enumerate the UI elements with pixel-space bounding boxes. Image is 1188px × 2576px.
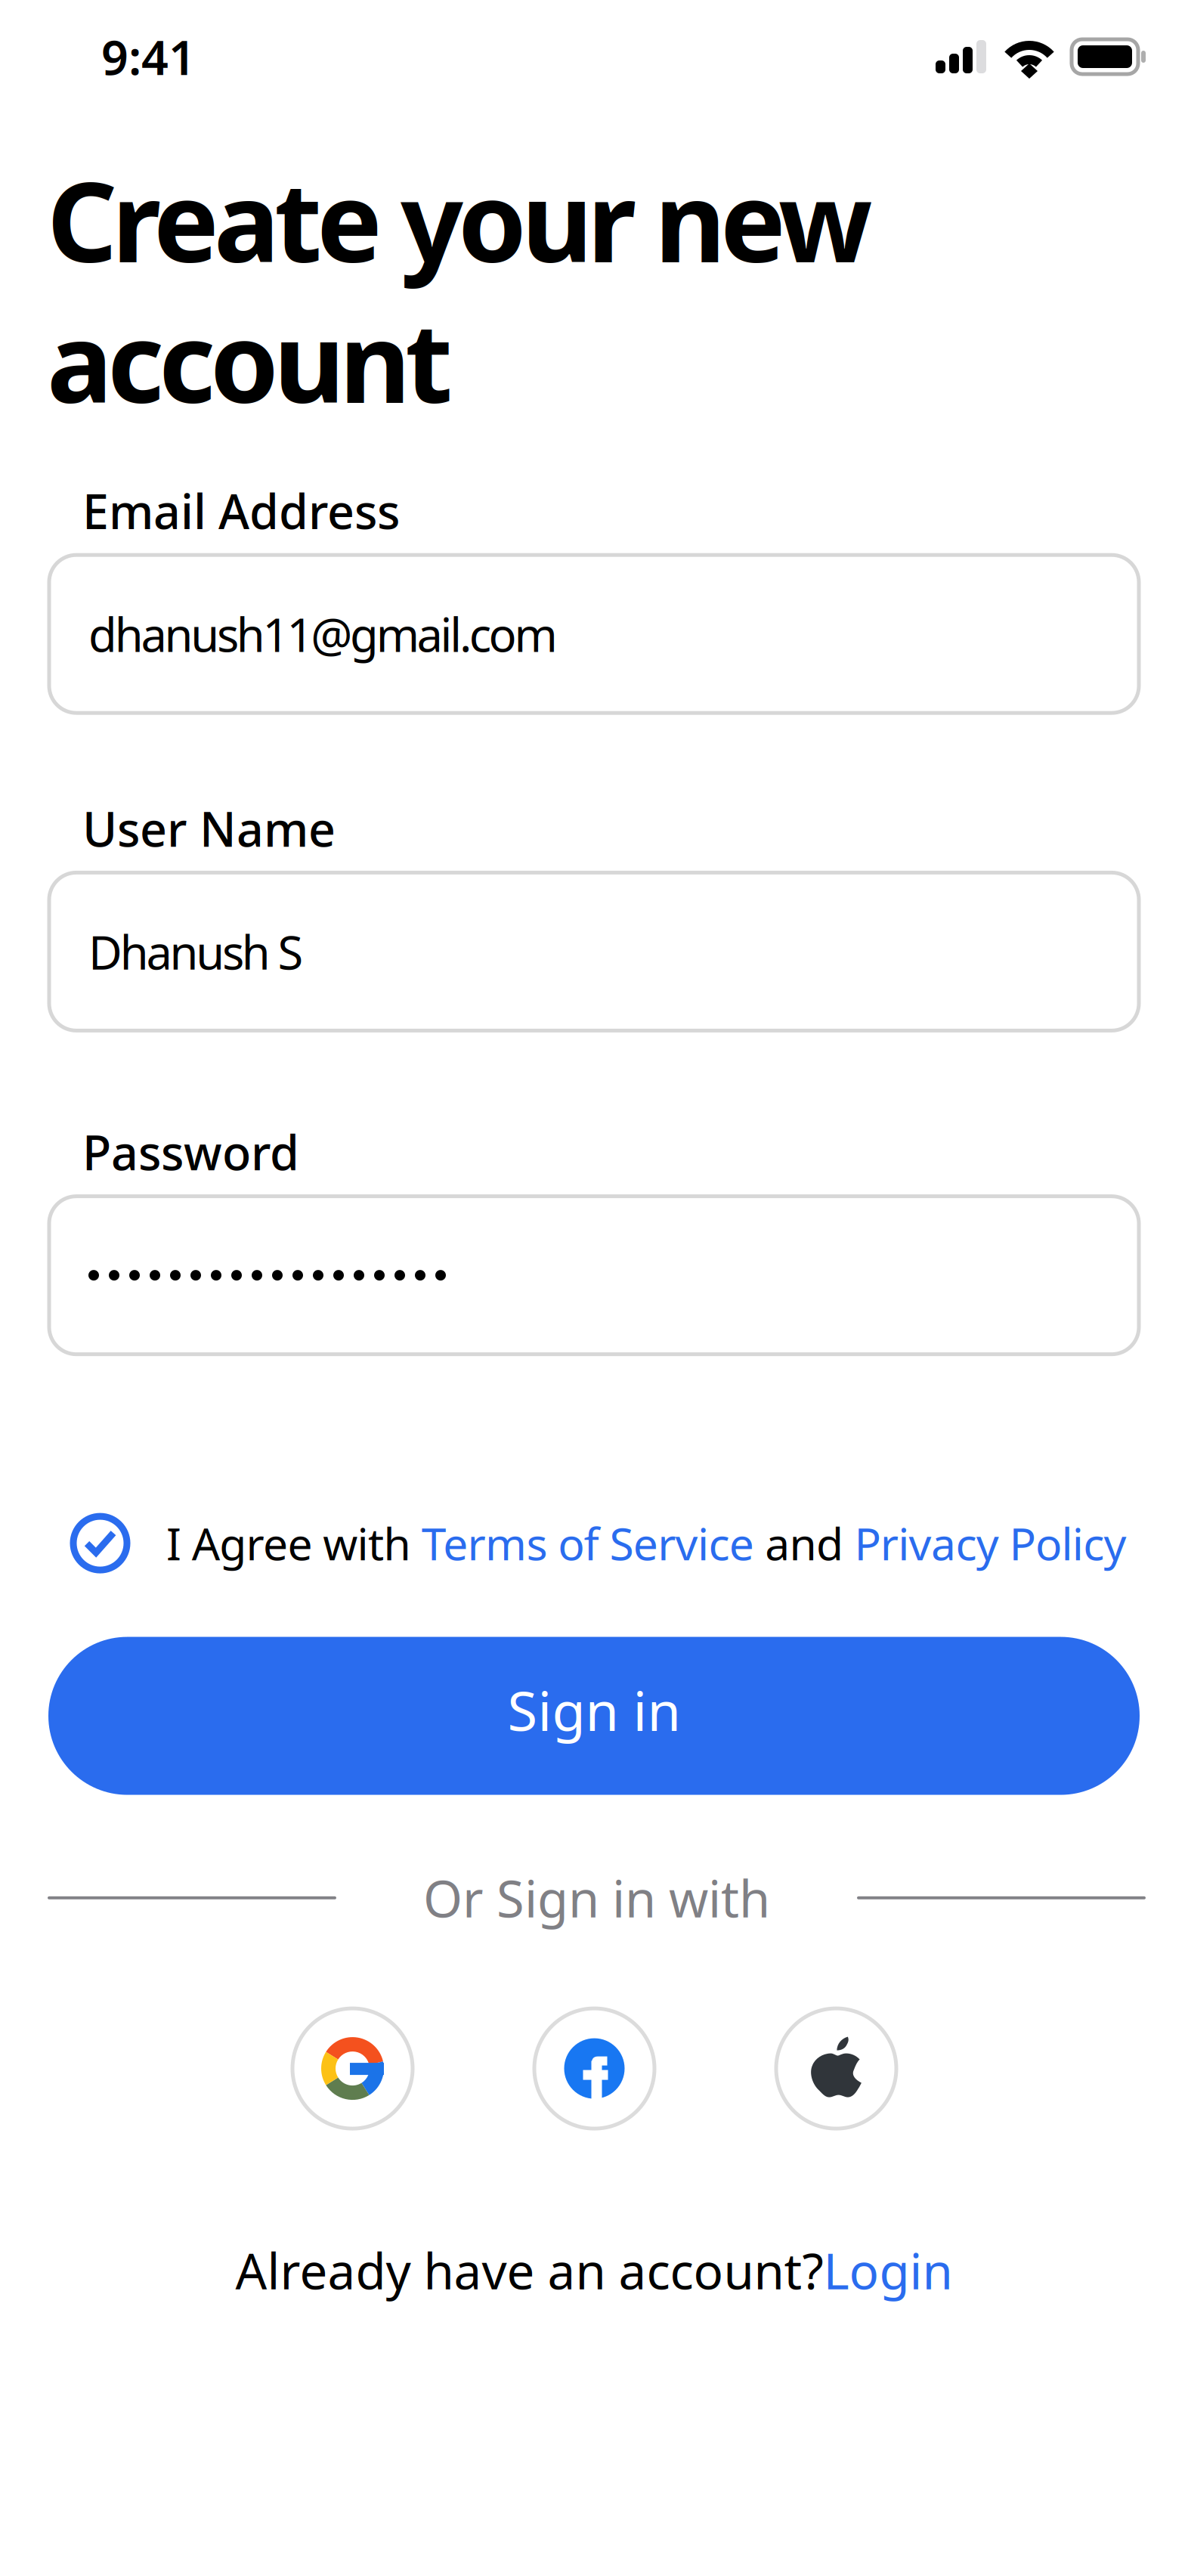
button[interactable]: Sign in with Google <box>292 2008 413 2129</box>
staticText: Or Sign in with <box>423 1864 770 1931</box>
staticText: Password <box>82 1120 299 1183</box>
button[interactable]: Login <box>823 2237 953 2303</box>
staticText: and <box>754 1514 854 1573</box>
staticText: Email Address <box>82 479 400 542</box>
staticText: dhanush11@gmail.com <box>88 603 557 665</box>
staticText: Create your new account <box>47 147 872 433</box>
staticText: User Name <box>82 797 336 860</box>
button[interactable]: Dhanush S <box>49 873 1139 1031</box>
staticText: Already have an account? <box>235 2237 823 2303</box>
button[interactable]: Sign in <box>48 1637 1140 1795</box>
button[interactable]: Privacy Policy <box>854 1514 1126 1573</box>
staticText: Dhanush S <box>88 921 303 982</box>
button[interactable]: Terms of Service <box>422 1514 754 1573</box>
button[interactable]: Sign in with Apple <box>776 2008 896 2129</box>
button[interactable]: dhanush11@gmail.com <box>49 555 1139 713</box>
staticText: Login <box>823 2237 953 2303</box>
staticText: Terms of Service <box>422 1514 754 1573</box>
staticText: I Agree with <box>166 1514 422 1573</box>
staticText: Sign in <box>507 1674 681 1746</box>
button[interactable] <box>49 1196 1139 1354</box>
button[interactable]: Sign in with Facebook <box>534 2008 654 2129</box>
button[interactable]: I Agree with Terms of Service and Privac… <box>73 1516 127 1570</box>
staticText: 9:41 <box>101 25 196 88</box>
staticText: Privacy Policy <box>854 1514 1126 1573</box>
